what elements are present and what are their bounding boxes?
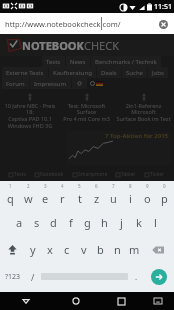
staticText: 2in1-Referenz Microsoft Surface Book im … — [116, 102, 171, 123]
button[interactable]: s — [28, 209, 45, 236]
button[interactable]: Search — [72, 78, 87, 89]
button[interactable]: 7 — [105, 183, 122, 209]
button[interactable]: 3 — [37, 183, 54, 209]
staticText: 11:51 — [154, 2, 172, 12]
staticText: . — [135, 271, 138, 282]
button[interactable]: Deals — [97, 67, 121, 78]
button[interactable]: y — [24, 236, 41, 263]
button[interactable]: Benchmarks / Technik — [91, 56, 161, 67]
staticText: c — [64, 242, 70, 257]
button[interactable]: Home — [51, 292, 101, 310]
button[interactable]: / — [24, 263, 41, 290]
button[interactable]: Tablet — [116, 171, 136, 178]
staticText: 10 Jahre NBC - Preis 18: Captiva PAD 10.… — [3, 102, 57, 130]
button[interactable]: Tests — [42, 56, 65, 67]
staticText: b — [97, 242, 104, 257]
staticText: y — [30, 242, 36, 257]
staticText: 6 — [95, 183, 98, 189]
staticText: l — [154, 215, 157, 230]
button[interactable]: 2in1-Referenz Microsoft Surface Book im … — [116, 91, 171, 123]
staticText: e — [42, 191, 49, 206]
button[interactable]: Externe Tests — [2, 67, 48, 78]
button[interactable]: Smartphone — [73, 171, 108, 178]
staticText: 3 — [44, 183, 47, 189]
staticText: Benchmarks / Technik — [95, 58, 157, 66]
staticText: i — [129, 191, 132, 206]
staticText: z — [94, 191, 100, 206]
staticText: Tests — [14, 171, 26, 178]
button[interactable]: 8 — [122, 183, 139, 209]
button[interactable]: l — [147, 209, 164, 236]
button[interactable]: Space — [41, 269, 128, 284]
button[interactable]: Jobs — [148, 67, 168, 78]
button[interactable]: Notebook — [35, 171, 64, 178]
staticText: 5 — [78, 183, 81, 189]
button[interactable]: Recent apps — [101, 292, 141, 310]
staticText: 7 — [112, 183, 115, 189]
staticText: Suche — [126, 69, 143, 77]
button[interactable]: Suche — [122, 67, 147, 78]
staticText: m — [129, 242, 140, 257]
button[interactable]: Back — [0, 292, 51, 310]
button[interactable]: Go — [145, 263, 173, 290]
staticText: ?123 — [5, 272, 21, 282]
staticText: 9 — [146, 183, 149, 189]
button[interactable]: Ticker — [145, 171, 165, 178]
button[interactable]: 10 Jahre NBC - Preis 18: Captiva PAD 10.… — [3, 91, 57, 130]
staticText: 1 — [9, 183, 12, 189]
button[interactable]: a — [11, 209, 28, 236]
button[interactable]: ?123 — [1, 263, 24, 290]
button[interactable]: Impressum — [30, 78, 71, 89]
button[interactable]: c — [58, 236, 75, 263]
staticText: 7 Top-Aktien für 2015 — [105, 132, 169, 140]
staticText: Jobs — [152, 69, 164, 77]
button[interactable]: 4 — [54, 183, 71, 209]
button[interactable]: Backspace — [143, 236, 173, 263]
button[interactable]: x — [41, 236, 58, 263]
button[interactable]: v — [75, 236, 92, 263]
button[interactable]: 1 — [1, 183, 19, 209]
button[interactable]: Shift — [1, 236, 24, 263]
staticText: a — [16, 215, 23, 230]
button[interactable]: n — [109, 236, 126, 263]
button[interactable]: 0 — [156, 183, 173, 209]
button[interactable]: Hide keyboard — [141, 292, 174, 310]
staticText: Ticker — [150, 171, 165, 178]
button[interactable]: j — [113, 209, 130, 236]
staticText: t — [78, 191, 82, 206]
button[interactable]: . — [128, 263, 145, 290]
staticText: CHECK — [84, 38, 119, 53]
staticText: Tablet — [121, 171, 136, 178]
staticText: k — [136, 215, 142, 230]
button[interactable]: b — [92, 236, 109, 263]
button[interactable]: g — [79, 209, 96, 236]
staticText: Impressum — [34, 80, 67, 88]
button[interactable]: 9 — [139, 183, 156, 209]
button[interactable]: Clear text — [156, 17, 170, 31]
staticText: x — [47, 242, 53, 257]
staticText: 2 — [27, 183, 30, 189]
button[interactable]: f — [62, 209, 79, 236]
staticText: News — [70, 58, 86, 66]
button[interactable]: m — [126, 236, 143, 263]
staticText: 4 — [61, 183, 64, 189]
button[interactable]: Kaufberatung — [49, 67, 96, 78]
staticText: h — [101, 215, 108, 230]
button[interactable]: News — [66, 56, 90, 67]
button[interactable]: d — [45, 209, 62, 236]
staticText: s — [34, 215, 40, 230]
button[interactable]: h — [96, 209, 113, 236]
button[interactable]: Tests — [9, 171, 26, 178]
button[interactable]: 6 — [88, 183, 105, 209]
staticText: v — [81, 242, 87, 257]
button[interactable]: k — [130, 209, 147, 236]
staticText: w — [24, 191, 33, 206]
button[interactable]: Forum — [2, 78, 29, 89]
staticText: Tests — [46, 58, 61, 66]
staticText: http://www.notebookcheck.com/ — [5, 19, 121, 29]
staticText: 8 — [129, 183, 132, 189]
button[interactable]: Test: Microsoft Surface Pro 4 mit Core m… — [59, 91, 114, 123]
button[interactable]: 5 — [71, 183, 88, 209]
staticText: Smartphone — [78, 171, 108, 178]
button[interactable]: 2 — [19, 183, 37, 209]
